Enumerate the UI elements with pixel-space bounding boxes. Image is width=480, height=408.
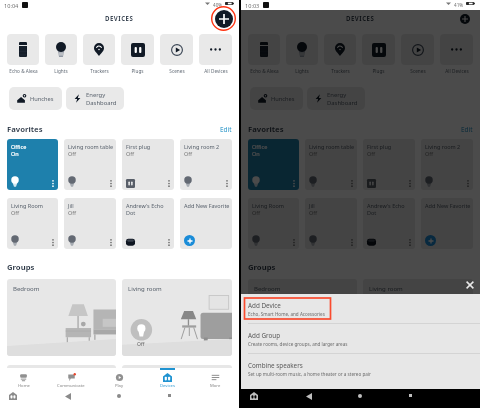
staticText: Add Device <box>248 301 281 310</box>
staticText: Off <box>252 209 261 216</box>
staticText: Scenes <box>169 68 185 74</box>
button[interactable]: Communicate <box>288 368 336 389</box>
button[interactable]: Energy Dashboard <box>66 87 124 110</box>
button[interactable]: Jill <box>64 198 116 249</box>
button[interactable]: More <box>191 368 239 389</box>
staticText: Office <box>11 143 27 150</box>
staticText: Off <box>68 209 77 216</box>
button[interactable]: Living room 2 <box>180 139 232 190</box>
staticText: Off <box>68 150 77 157</box>
staticText: Off <box>309 150 318 157</box>
button[interactable]: Add Device <box>241 294 480 323</box>
staticText: Living room 2 <box>184 143 220 150</box>
button[interactable]: Edit <box>461 125 473 134</box>
staticText: 10:04 <box>4 2 19 10</box>
staticText: Off <box>184 150 193 157</box>
staticText: Play <box>115 383 124 389</box>
button[interactable]: Living room <box>363 279 473 356</box>
button[interactable]: Echo & Alexa <box>248 34 280 74</box>
button[interactable]: Play <box>95 368 143 389</box>
button[interactable]: Living room <box>122 279 232 356</box>
button[interactable]: Scenes <box>160 34 193 74</box>
button[interactable]: Living room table <box>64 139 116 190</box>
button[interactable]: Jill <box>305 198 357 249</box>
staticText: Hunches <box>30 95 54 103</box>
button[interactable]: Scenes <box>401 34 434 74</box>
button[interactable]: Add New Favorite <box>421 198 473 249</box>
button[interactable]: Devices <box>143 368 191 389</box>
button[interactable]: Plugs <box>121 34 154 74</box>
button[interactable]: Add Group <box>241 324 480 353</box>
staticText: Living room 2 <box>425 143 461 150</box>
button[interactable]: Hunches <box>9 87 62 110</box>
button[interactable]: Hunches <box>250 87 303 110</box>
staticText: Energy Dashboard <box>327 91 358 107</box>
button[interactable]: Trackers <box>83 34 115 74</box>
button[interactable]: Combine speakers <box>241 354 480 387</box>
staticText: Devices <box>160 383 175 389</box>
button[interactable]: Plugs <box>362 34 395 74</box>
staticText: All Devices <box>204 68 228 74</box>
staticText: Groups <box>7 262 35 272</box>
button[interactable]: Edit <box>220 125 232 134</box>
button[interactable]: Home <box>0 368 47 389</box>
staticText: Jill <box>309 202 315 209</box>
button[interactable]: Play <box>336 368 384 389</box>
staticText: Set up multi-room music, a home theater … <box>248 371 371 377</box>
staticText: Living Room <box>11 202 43 209</box>
button[interactable]: All Devices <box>199 34 232 74</box>
button[interactable]: Living room 2 <box>421 139 473 190</box>
staticText: Off <box>309 209 318 216</box>
staticText: On <box>11 150 19 157</box>
button[interactable]: Add device <box>215 10 233 28</box>
staticText: Plugs <box>372 68 385 74</box>
staticText: Living room <box>128 285 162 293</box>
staticText: Add New Favorite <box>425 202 471 209</box>
staticText: Groups <box>248 262 276 272</box>
staticText: Living room table <box>309 143 355 150</box>
button[interactable]: All Devices <box>440 34 473 74</box>
button[interactable]: Living Room <box>7 198 58 249</box>
staticText: Living Room <box>252 202 284 209</box>
button[interactable]: Energy Dashboard <box>307 87 365 110</box>
staticText: 10:03 <box>245 2 260 10</box>
button[interactable]: Echo & Alexa <box>7 34 39 74</box>
button[interactable]: Office <box>248 139 299 190</box>
staticText: First plug <box>126 143 151 150</box>
button[interactable]: Andrew's Echo Dot <box>363 198 415 249</box>
staticText: Trackers <box>90 68 109 74</box>
button[interactable]: Add device <box>460 14 470 24</box>
button[interactable]: Lights <box>286 34 318 74</box>
staticText: Andrew's Echo Dot <box>126 202 173 216</box>
button[interactable]: First plug <box>122 139 174 190</box>
button[interactable]: Bedroom <box>7 279 116 356</box>
button[interactable]: Add New Favorite <box>180 198 232 249</box>
button[interactable]: Communicate <box>47 368 95 389</box>
button[interactable]: Home <box>241 368 288 389</box>
button[interactable]: Trackers <box>324 34 356 74</box>
button[interactable]: Office <box>7 139 58 190</box>
button[interactable]: First plug <box>363 139 415 190</box>
staticText: Communicate <box>57 383 85 389</box>
staticText: Add Group <box>248 331 281 340</box>
button[interactable]: Living room table <box>305 139 357 190</box>
staticText: Off <box>425 150 434 157</box>
staticText: Add New Favorite <box>184 202 230 209</box>
staticText: All Devices <box>445 68 469 74</box>
staticText: Combine speakers <box>248 361 303 370</box>
button[interactable] <box>122 365 232 390</box>
button[interactable]: Living Room <box>248 198 299 249</box>
button[interactable] <box>363 365 473 390</box>
staticText: Bedroom <box>254 285 281 293</box>
button[interactable] <box>7 365 116 390</box>
button[interactable]: Lights <box>45 34 77 74</box>
button[interactable]: Close <box>464 279 475 290</box>
staticText: DEVICES <box>105 14 134 22</box>
staticText: Off <box>11 209 20 216</box>
button[interactable] <box>248 365 357 390</box>
button[interactable]: Andrew's Echo Dot <box>122 198 174 249</box>
button[interactable]: Bedroom <box>248 279 357 356</box>
